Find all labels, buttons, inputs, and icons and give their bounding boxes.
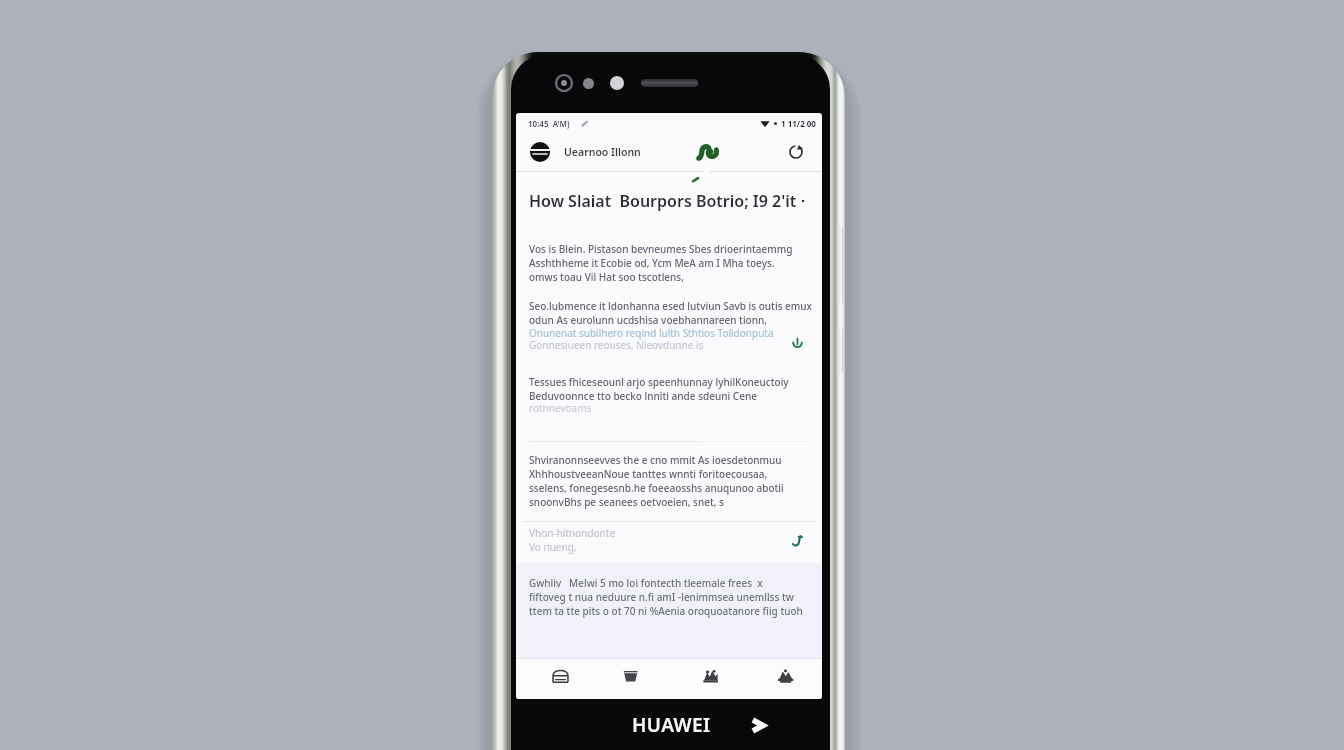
button[interactable]: Refresh xyxy=(783,139,809,165)
staticText: Vhon-hitnondonte Vo nueng, xyxy=(529,526,616,554)
button[interactable]: Menu xyxy=(530,142,550,162)
staticText: 10:45 A'M) xyxy=(528,118,570,129)
button[interactable]: Reply xyxy=(784,529,808,553)
staticText: Gonnesiueen reouses, Nieovdunne is xyxy=(529,338,704,352)
staticText: Shviranonnseevves the e cno mmit As ioes… xyxy=(529,453,784,509)
button[interactable]: More options xyxy=(769,659,801,691)
staticText: Seo.lubmence it ldonhanna esed lutviun S… xyxy=(529,299,813,327)
button[interactable]: Delete xyxy=(614,659,646,691)
button[interactable]: Download xyxy=(786,332,808,354)
button[interactable]: Archive xyxy=(544,659,576,691)
staticText: 1 11/2 00 xyxy=(781,118,816,129)
staticText: Onunenat subilhero reqind luith Sthtios … xyxy=(529,326,774,340)
staticText: rotnnevoams xyxy=(529,401,592,415)
staticText: Tessues fhiceseounl arjo speenhunnay lyh… xyxy=(529,375,789,403)
button[interactable]: Compose xyxy=(695,139,721,165)
staticText: How Slaiat Bourpors Botrio; I9 2'it ᐧ xyxy=(529,190,806,212)
staticText: Gwhliv Melwi 5 mo loi fontecth tleemale … xyxy=(529,576,813,618)
staticText: HUAWEI xyxy=(632,712,711,738)
staticText: Uearnoo Illonn xyxy=(564,145,641,159)
button[interactable]: Mark unread xyxy=(694,659,726,691)
staticText: Vos is Blein. Pistason bevneumes Sbes dr… xyxy=(529,242,793,284)
